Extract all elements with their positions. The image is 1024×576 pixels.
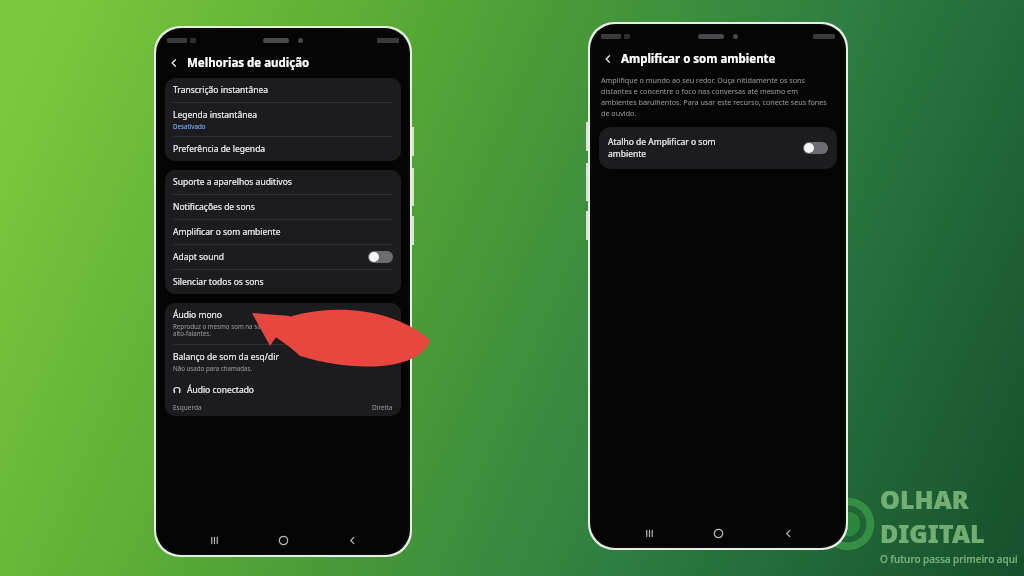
staticText: Transcrição instantânea <box>173 84 268 96</box>
button[interactable]: Áudio conectado <box>165 378 401 402</box>
button[interactable]: Toggle switch off <box>368 251 393 263</box>
staticText: Balanço de som da esq/dir <box>173 351 279 363</box>
staticText: O futuro passa primeiro aqui <box>880 552 1018 566</box>
button[interactable]: Notificações de sons <box>165 195 401 220</box>
staticText: Legenda instantânea <box>173 109 257 121</box>
staticText: Desativado <box>173 122 206 130</box>
staticText: Reproduz o mesmo som na saída dos dois a… <box>173 322 296 338</box>
button[interactable]: Home <box>705 520 731 546</box>
button[interactable]: Áudio mono <box>165 303 401 345</box>
button[interactable]: Transcrição instantânea <box>165 78 401 103</box>
button[interactable]: Suporte a aparelhos auditivos <box>165 170 401 195</box>
button[interactable]: Amplificar o som ambiente <box>165 220 401 245</box>
button[interactable]: Recents <box>201 527 227 553</box>
button[interactable]: Legenda instantânea <box>165 103 401 137</box>
staticText: Adapt sound <box>173 251 224 263</box>
button[interactable]: Toggle switch off <box>803 142 828 154</box>
button[interactable]: Back <box>165 54 183 72</box>
button[interactable]: Atalho de Amplificar o som ambiente <box>599 127 837 169</box>
staticText: Esquerda <box>173 403 202 412</box>
button[interactable]: Back <box>775 520 801 546</box>
button[interactable]: Back <box>339 527 365 553</box>
staticText: OLHAR <box>880 482 969 516</box>
staticText: Amplifique o mundo ao seu redor. Ouça ni… <box>601 75 835 118</box>
button[interactable]: Balanço de som da esq/dir <box>165 345 401 378</box>
staticText: Atalho de Amplificar o som ambiente <box>608 136 716 160</box>
staticText: Áudio conectado <box>187 384 255 396</box>
staticText: Notificações de sons <box>173 201 255 213</box>
button[interactable]: Adapt sound <box>165 245 401 270</box>
button[interactable]: Preferência de legenda <box>165 137 401 161</box>
button[interactable]: Home <box>270 527 296 553</box>
staticText: Direita <box>372 403 393 412</box>
button[interactable]: Back <box>599 50 617 68</box>
staticText: Silenciar todos os sons <box>173 276 264 288</box>
button[interactable]: Recents <box>636 520 662 546</box>
staticText: Preferência de legenda <box>173 143 266 155</box>
staticText: Melhorias de audição <box>187 55 310 71</box>
staticText: Amplificar o som ambiente <box>173 226 281 238</box>
button[interactable]: Silenciar todos os sons <box>165 270 401 294</box>
staticText: Áudio mono <box>173 309 222 321</box>
staticText: DIGITAL <box>880 516 985 550</box>
staticText: Amplificar o som ambiente <box>621 51 776 67</box>
staticText: Suporte a aparelhos auditivos <box>173 176 292 188</box>
button[interactable]: Toggle switch off <box>368 318 393 330</box>
staticText: Não usado para chamadas. <box>173 364 253 372</box>
